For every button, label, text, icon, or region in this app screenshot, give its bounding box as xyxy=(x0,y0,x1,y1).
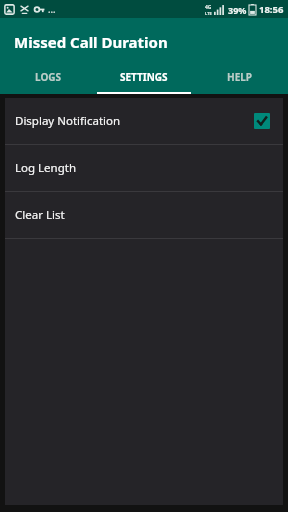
staticText: Log Length xyxy=(15,160,76,176)
button[interactable]: HELP xyxy=(192,66,288,94)
staticText: LOGS xyxy=(35,70,62,84)
staticText: ... xyxy=(48,3,56,15)
button[interactable]: Display Notification xyxy=(5,98,283,144)
staticText: LTE xyxy=(205,11,212,16)
staticText: 39% xyxy=(228,4,247,16)
button[interactable]: Log Length xyxy=(5,145,283,191)
staticText: Clear List xyxy=(15,207,65,223)
staticText: SETTINGS xyxy=(120,70,168,84)
staticText: 4G xyxy=(205,4,212,11)
staticText: Missed Call Duration xyxy=(14,32,168,52)
button[interactable]: SETTINGS xyxy=(96,66,192,94)
staticText: 18:56 xyxy=(259,3,284,16)
button[interactable]: LOGS xyxy=(0,66,96,94)
staticText: Display Notification xyxy=(15,113,121,129)
staticText: HELP xyxy=(227,70,253,84)
button[interactable]: Clear List xyxy=(5,192,283,238)
button[interactable]: Display Notification enabled xyxy=(254,113,270,129)
